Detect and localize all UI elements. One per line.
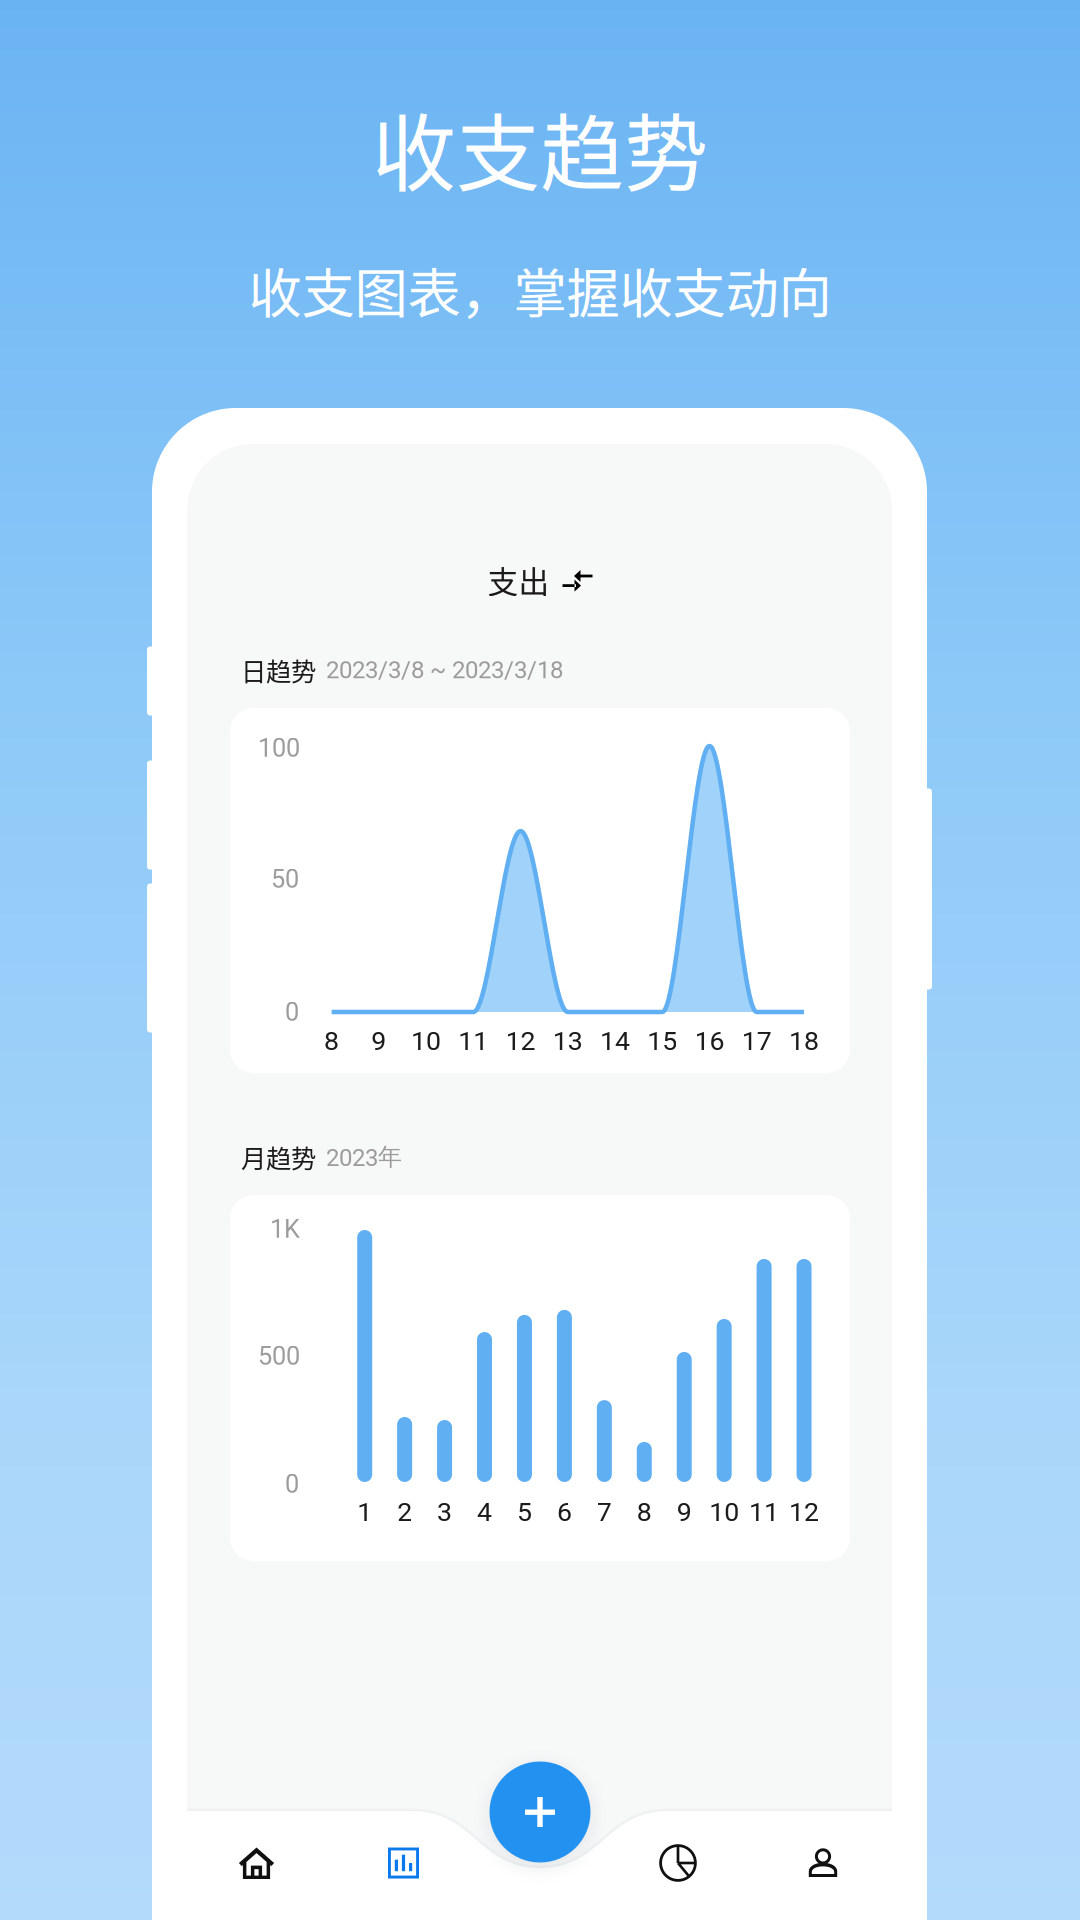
staticText: 8 (637, 1496, 652, 1528)
staticText: 12 (789, 1496, 819, 1528)
button[interactable]: 支出 (479, 552, 600, 608)
staticText: 11 (458, 1025, 488, 1057)
button[interactable]: Home (236, 1843, 276, 1883)
staticText: 0 (285, 997, 299, 1027)
staticText: 9 (677, 1496, 692, 1528)
staticText: 13 (553, 1025, 583, 1057)
staticText: 收支趋势 (372, 87, 708, 209)
staticText: 12 (506, 1025, 536, 1057)
staticText: 1 (357, 1496, 372, 1528)
staticText: 7 (597, 1496, 612, 1528)
staticText: 收支图表，掌握收支动向 (248, 251, 831, 329)
button[interactable]: Reports (658, 1843, 698, 1883)
staticText: 50 (271, 864, 299, 894)
staticText: 18 (789, 1025, 819, 1057)
staticText: 3 (437, 1496, 452, 1528)
button[interactable]: Add record (489, 1761, 590, 1862)
button[interactable]: Trends (383, 1843, 423, 1883)
staticText: 4 (477, 1496, 492, 1528)
staticText: 100 (258, 733, 300, 763)
staticText: 2 (397, 1496, 412, 1528)
staticText: 9 (371, 1025, 386, 1057)
staticText: 10 (709, 1496, 739, 1528)
staticText: 月趋势 (241, 1139, 316, 1175)
staticText: 2023/3/8 ~ 2023/3/18 (326, 656, 563, 684)
button[interactable]: Profile (803, 1843, 843, 1883)
staticText: 17 (742, 1025, 772, 1057)
staticText: 16 (694, 1025, 724, 1057)
staticText: 11 (749, 1496, 779, 1528)
staticText: 500 (258, 1341, 300, 1371)
staticText: 日趋势 (241, 652, 316, 688)
staticText: 15 (647, 1025, 677, 1057)
staticText: 2023年 (326, 1142, 402, 1172)
staticText: 5 (517, 1496, 532, 1528)
staticText: 8 (324, 1025, 339, 1057)
staticText: 支出 (487, 558, 549, 602)
staticText: 10 (411, 1025, 441, 1057)
staticText: 14 (600, 1025, 630, 1057)
staticText: 0 (285, 1469, 299, 1499)
staticText: 6 (557, 1496, 572, 1528)
staticText: 1K (270, 1214, 300, 1244)
